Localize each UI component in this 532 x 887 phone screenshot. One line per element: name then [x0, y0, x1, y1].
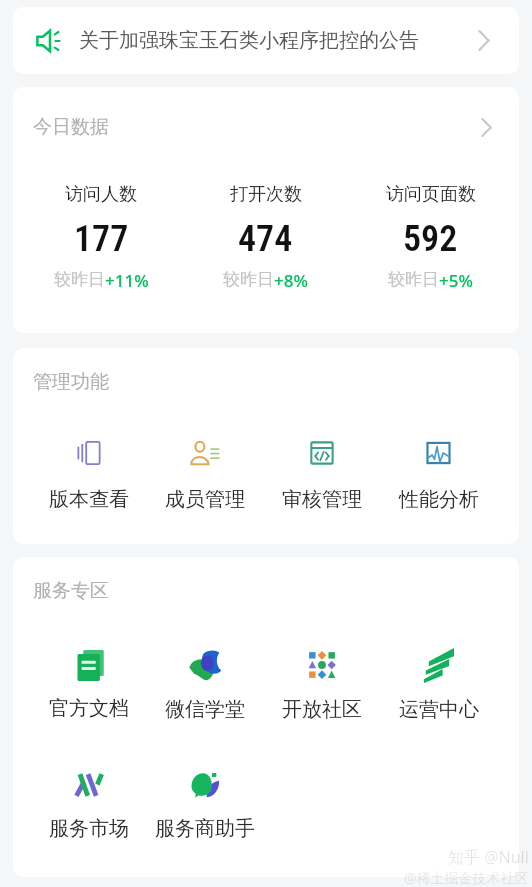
staticText: 管理功能	[33, 370, 109, 394]
staticText: 审核管理	[282, 487, 362, 512]
staticText: +5%	[439, 269, 473, 292]
button[interactable]: 成员管理	[147, 438, 263, 512]
button[interactable]: 版本查看	[31, 438, 147, 512]
staticText: 开放社区	[282, 697, 362, 722]
staticText: 较昨日	[54, 269, 105, 290]
staticText: 592	[403, 218, 458, 260]
staticText: 成员管理	[165, 487, 245, 512]
staticText: 访问页面数	[386, 183, 476, 206]
button[interactable]: 官方文档	[31, 648, 147, 721]
staticText: 知乎 @Null	[448, 846, 529, 868]
staticText: 打开次数	[230, 183, 302, 206]
staticText: 服务商助手	[155, 816, 255, 841]
staticText: +8%	[274, 269, 308, 292]
staticText: 服务市场	[49, 816, 129, 841]
staticText: 微信学堂	[165, 697, 245, 722]
button[interactable]: 关于加强珠宝玉石类小程序把控的公告	[13, 7, 519, 74]
staticText: 版本查看	[49, 487, 129, 512]
staticText: 服务专区	[33, 579, 109, 603]
staticText: 今日数据	[33, 115, 109, 139]
button[interactable]: 微信学堂	[147, 648, 263, 722]
button[interactable]: 今日数据	[13, 87, 519, 333]
staticText: 性能分析	[399, 487, 479, 512]
button[interactable]: 运营中心	[380, 648, 497, 722]
staticText: 访问人数	[65, 183, 137, 206]
staticText: 关于加强珠宝玉石类小程序把控的公告	[79, 28, 419, 53]
button[interactable]: 性能分析	[380, 438, 497, 512]
staticText: 官方文档	[49, 696, 129, 721]
button[interactable]: 审核管理	[263, 438, 380, 512]
staticText: +11%	[105, 269, 149, 292]
button[interactable]: 开放社区	[263, 648, 380, 722]
staticText: 较昨日	[223, 269, 274, 290]
button[interactable]: 服务市场	[31, 770, 147, 841]
staticText: 运营中心	[399, 697, 479, 722]
staticText: 177	[74, 218, 129, 260]
staticText: @稀土掘金技术社区	[404, 868, 529, 887]
staticText: 较昨日	[388, 269, 439, 290]
button[interactable]: 服务商助手	[147, 770, 263, 841]
staticText: 474	[238, 218, 293, 260]
